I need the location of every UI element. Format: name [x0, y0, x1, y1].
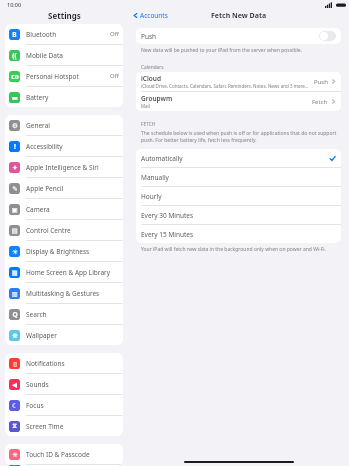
staticText: Notifications: [26, 359, 65, 368]
staticText: Accounts: [140, 11, 168, 20]
button[interactable]: ◀: [5, 374, 123, 394]
staticText: ▣: [11, 206, 18, 214]
button[interactable]: ✳: [5, 444, 123, 464]
staticText: Apple Pencil: [26, 184, 64, 193]
staticText: Q: [12, 310, 18, 319]
staticText: Automatically: [141, 154, 183, 163]
staticText: Wallpaper: [26, 331, 57, 340]
button[interactable]: Hourly: [136, 187, 341, 205]
staticText: Push: [314, 78, 328, 86]
button[interactable]: Manually: [136, 168, 341, 186]
staticText: Fetch New Data: [211, 11, 267, 21]
staticText: FETCH: [141, 121, 156, 128]
staticText: ▯: [13, 360, 17, 368]
button[interactable]: ((: [5, 45, 123, 65]
button[interactable]: ⧖: [5, 416, 123, 436]
button[interactable]: iCloud: [136, 72, 341, 91]
staticText: Manually: [141, 173, 169, 182]
button[interactable]: ❋: [5, 325, 123, 345]
staticText: Home Screen & App Library: [26, 268, 111, 277]
staticText: Calendars: [141, 64, 164, 71]
button[interactable]: ☾: [5, 395, 123, 415]
staticText: General: [26, 121, 50, 130]
staticText: ☾: [12, 402, 18, 410]
button[interactable]: B: [5, 24, 123, 44]
staticText: Multitasking & Gestures: [26, 289, 100, 298]
staticText: Off: [110, 30, 119, 38]
staticText: Fetch: [312, 98, 328, 106]
staticText: New data will be pushed to your iPad fro…: [141, 47, 302, 54]
staticText: Search: [26, 310, 47, 319]
staticText: 10:00: [7, 1, 22, 8]
staticText: ▥: [11, 290, 18, 298]
staticText: ▤: [11, 227, 18, 235]
staticText: ✎: [12, 185, 18, 193]
button[interactable]: Groupwm: [136, 92, 341, 111]
button[interactable]: Q: [5, 304, 123, 324]
staticText: ✋: [10, 465, 19, 466]
staticText: B: [12, 30, 17, 39]
button[interactable]: ▤: [5, 220, 123, 240]
button[interactable]: ☀: [5, 241, 123, 261]
staticText: ▬: [11, 94, 18, 102]
staticText: Hourly: [141, 192, 162, 201]
button[interactable]: !: [5, 136, 123, 156]
button[interactable]: ▣: [5, 199, 123, 219]
staticText: Personal Hotspot: [26, 72, 79, 81]
staticText: Off: [110, 72, 119, 80]
staticText: ⚙: [12, 122, 18, 130]
button[interactable]: co: [5, 66, 123, 86]
staticText: Sounds: [26, 380, 49, 389]
button[interactable]: Every 30 Minutes: [136, 206, 341, 224]
button[interactable]: Accounts: [128, 9, 172, 22]
staticText: Mail: [141, 103, 150, 109]
button[interactable]: Push: [136, 28, 341, 44]
staticText: Focus: [26, 401, 44, 410]
staticText: ☀: [12, 248, 18, 256]
button[interactable]: ✋: [5, 465, 123, 466]
button[interactable]: Automatically: [136, 149, 341, 167]
button[interactable]: Every 15 Minutes: [136, 225, 341, 243]
button[interactable]: ▬: [5, 87, 123, 107]
staticText: iCloud: [141, 74, 162, 83]
staticText: ▦: [11, 269, 18, 277]
staticText: Battery: [26, 93, 49, 102]
staticText: ✳: [12, 451, 18, 459]
staticText: Every 15 Minutes: [141, 230, 194, 239]
staticText: Groupwm: [141, 94, 173, 103]
staticText: ((: [12, 51, 17, 60]
staticText: ❋: [12, 332, 18, 340]
staticText: Mobile Data: [26, 51, 63, 60]
staticText: ✦: [12, 164, 18, 172]
staticText: iCloud Drive, Contacts, Calendars, Safar…: [141, 83, 309, 89]
staticText: Bluetooth: [26, 30, 57, 39]
staticText: The schedule below is used when push is …: [141, 130, 337, 144]
button[interactable]: ▦: [5, 262, 123, 282]
staticText: ⧖: [12, 423, 17, 430]
button[interactable]: ▥: [5, 283, 123, 303]
staticText: Control Centre: [26, 226, 71, 235]
staticText: Camera: [26, 205, 50, 214]
staticText: Push: [141, 32, 157, 41]
staticText: Touch ID & Passcode: [26, 450, 90, 459]
staticText: co: [11, 72, 19, 81]
staticText: Every 30 Minutes: [141, 211, 194, 220]
staticText: ◀: [12, 381, 17, 389]
button[interactable]: ▯: [5, 353, 123, 373]
staticText: Display & Brightness: [26, 247, 90, 256]
staticText: Screen Time: [26, 422, 64, 431]
button[interactable]: ⚙: [5, 115, 123, 135]
staticText: !: [14, 142, 16, 151]
staticText: Settings: [48, 10, 81, 21]
button[interactable]: ✎: [5, 178, 123, 198]
staticText: Accessibility: [26, 142, 63, 151]
staticText: Apple Intelligence & Siri: [26, 163, 99, 172]
button[interactable]: ✦: [5, 157, 123, 177]
staticText: Your iPad will fetch new data in the bac…: [141, 246, 326, 253]
